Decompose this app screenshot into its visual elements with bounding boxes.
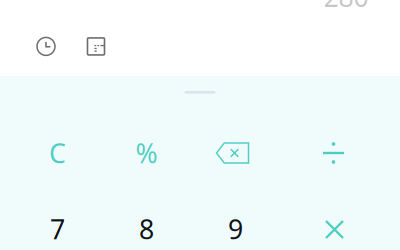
button[interactable]: C bbox=[13, 115, 102, 191]
button[interactable]: Divide bbox=[280, 115, 387, 191]
button[interactable]: 9 bbox=[191, 191, 280, 250]
staticText: 9 bbox=[228, 211, 243, 247]
button[interactable]: Delete bbox=[191, 115, 280, 191]
button[interactable]: Multiply bbox=[280, 191, 387, 250]
button[interactable]: % bbox=[102, 115, 191, 191]
staticText: 7 bbox=[50, 211, 65, 247]
button[interactable]: 7 bbox=[13, 191, 102, 250]
staticText: 280 bbox=[323, 0, 368, 14]
button[interactable]: History bbox=[28, 30, 64, 62]
staticText: 8 bbox=[139, 211, 154, 247]
button[interactable]: 8 bbox=[102, 191, 191, 250]
staticText: % bbox=[135, 135, 157, 171]
button[interactable]: Unit converter bbox=[78, 30, 114, 62]
staticText: C bbox=[49, 135, 66, 171]
